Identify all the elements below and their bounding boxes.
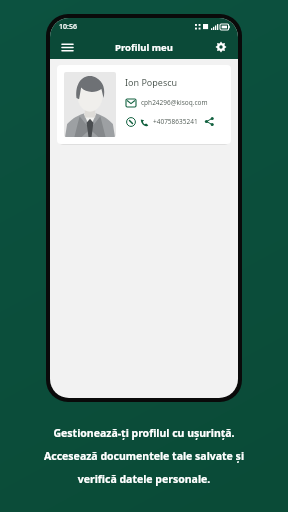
button[interactable]: Menu — [58, 38, 76, 56]
staticText: verifică datele personale. — [18, 472, 270, 486]
button[interactable]: Call — [139, 117, 149, 127]
staticText: Profilul meu — [115, 41, 173, 54]
staticText: Gestionează-ți profilul cu ușurință. — [18, 426, 270, 440]
button[interactable]: WhatsApp — [125, 116, 136, 127]
staticText: cph24296@kisoq.com — [141, 98, 208, 107]
staticText: 10:56 — [59, 22, 77, 32]
staticText: Accesează documentele tale salvate și — [18, 449, 270, 463]
button[interactable]: Settings — [212, 38, 230, 56]
button[interactable]: Share — [204, 116, 215, 127]
button[interactable]: Ion Popescu — [57, 65, 231, 144]
staticText: +40758635241 — [153, 117, 198, 126]
button[interactable]: Email — [125, 97, 136, 108]
staticText: Ion Popescu — [125, 76, 178, 88]
